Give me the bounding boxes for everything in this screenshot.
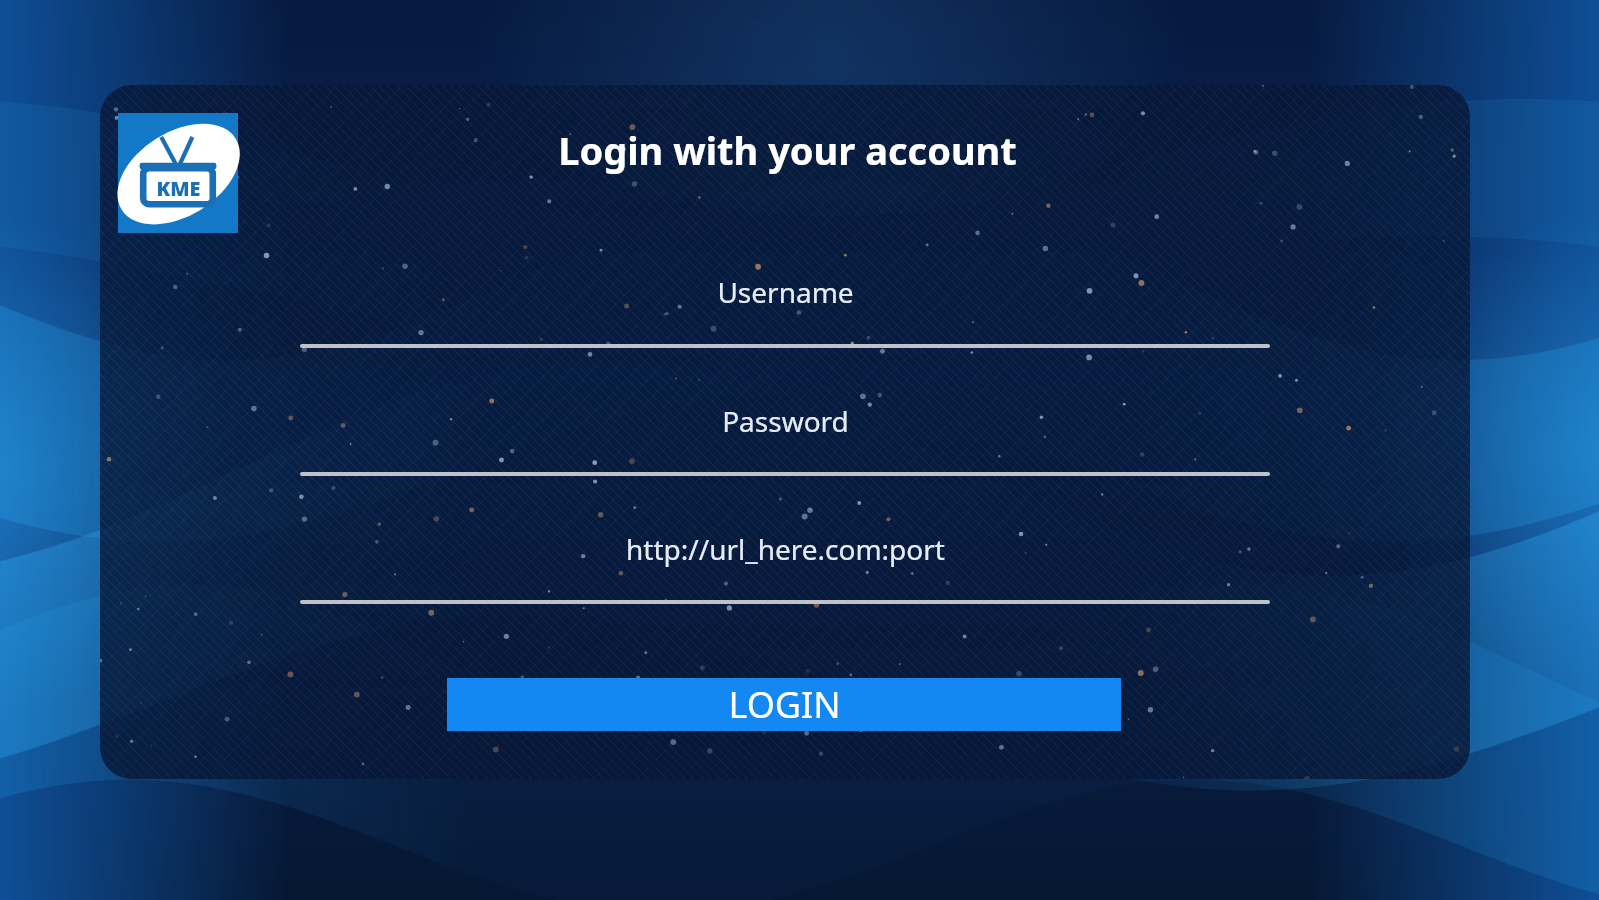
button[interactable]: Username <box>300 268 1270 316</box>
staticText: Login with your account <box>558 124 1017 174</box>
button[interactable]: LOGIN <box>447 678 1121 731</box>
button[interactable]: http://url_here.com:port <box>300 525 1270 573</box>
staticText: KME <box>156 175 201 202</box>
staticText: Password <box>722 402 849 440</box>
other: KME logo <box>118 113 238 240</box>
button[interactable]: Password <box>300 397 1270 445</box>
staticText: Username <box>717 273 854 311</box>
staticText: http://url_here.com:port <box>626 530 945 568</box>
staticText: LOGIN <box>728 680 841 729</box>
